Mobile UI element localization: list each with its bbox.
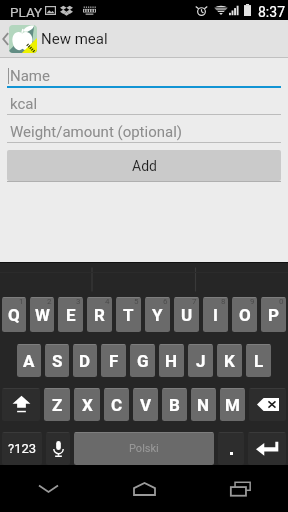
staticText: G	[137, 351, 149, 371]
button[interactable]: H	[159, 344, 184, 377]
staticText: ?123	[8, 441, 37, 456]
staticText: S	[52, 351, 63, 371]
button[interactable]: Home	[96, 465, 192, 512]
button[interactable]: Q	[2, 297, 26, 332]
staticText: M	[225, 395, 240, 415]
button[interactable]: Shift	[2, 388, 40, 421]
button[interactable]: Weight/amount (optional)	[7, 121, 281, 143]
button[interactable]: T	[116, 297, 141, 332]
button[interactable]: V	[133, 388, 158, 421]
button[interactable]: Back	[0, 465, 96, 512]
staticText: Q	[8, 305, 20, 325]
staticText: L	[254, 351, 264, 371]
staticText: H	[165, 351, 178, 371]
staticText: B	[169, 395, 180, 415]
button[interactable]: O	[232, 297, 257, 332]
button[interactable]: Polski	[74, 432, 214, 465]
staticText: W	[35, 305, 50, 325]
staticText: 7	[192, 297, 197, 306]
staticText: 8	[221, 297, 226, 306]
button[interactable]: X	[74, 388, 100, 421]
button[interactable]: P	[261, 297, 286, 332]
button[interactable]: A	[17, 344, 41, 377]
staticText: Polski	[129, 442, 159, 455]
staticText: T	[123, 305, 134, 325]
staticText: 9	[250, 297, 255, 306]
staticText: 4	[105, 297, 110, 306]
button[interactable]: Recent apps	[192, 465, 288, 512]
button[interactable]: F	[101, 344, 126, 377]
staticText: 6	[163, 297, 168, 306]
staticText: kcal	[10, 95, 38, 113]
button[interactable]: Add	[7, 150, 281, 181]
staticText: 3	[76, 297, 81, 306]
button[interactable]: E	[58, 297, 83, 332]
button[interactable]: Voice input	[46, 432, 70, 465]
button[interactable]: D	[73, 344, 97, 377]
staticText: 1	[19, 297, 24, 306]
button[interactable]: N	[191, 388, 216, 421]
button[interactable]: Enter	[248, 432, 286, 465]
staticText: Z	[52, 395, 63, 415]
staticText: F	[109, 351, 119, 371]
staticText: New meal	[41, 30, 108, 48]
staticText: K	[224, 351, 235, 371]
button[interactable]: W	[30, 297, 54, 332]
button[interactable]: U	[174, 297, 199, 332]
button[interactable]: kcal	[7, 93, 281, 115]
staticText: 5	[134, 297, 139, 306]
staticText: V	[140, 395, 152, 415]
staticText: Weight/amount (optional)	[10, 123, 183, 141]
staticText: 0	[279, 297, 284, 306]
staticText: C	[111, 395, 123, 415]
button[interactable]: M	[220, 388, 245, 421]
staticText: Add	[132, 158, 157, 174]
staticText: 2	[47, 297, 52, 306]
other: Navigate up	[2, 32, 9, 46]
button[interactable]: Backspace	[249, 388, 286, 421]
staticText: R	[94, 305, 105, 325]
button[interactable]: K	[217, 344, 242, 377]
staticText: P	[268, 305, 279, 325]
staticText: J	[196, 351, 206, 371]
button[interactable]: G	[130, 344, 155, 377]
button[interactable]: Z	[44, 388, 70, 421]
button[interactable]: R	[87, 297, 112, 332]
button[interactable]: S	[45, 344, 69, 377]
button[interactable]: J	[188, 344, 213, 377]
button[interactable]: Y	[145, 297, 170, 332]
button[interactable]: Period	[218, 432, 244, 465]
staticText: Name	[10, 67, 50, 85]
staticText: 8:37	[258, 4, 285, 20]
staticText: N	[197, 395, 210, 415]
staticText: O	[239, 305, 251, 325]
button[interactable]: I	[203, 297, 228, 332]
button[interactable]: L	[246, 344, 271, 377]
staticText: I	[213, 305, 218, 325]
staticText: E	[66, 305, 76, 325]
button[interactable]: ?123	[2, 432, 42, 465]
staticText: D	[79, 351, 91, 371]
staticText: PLAY	[10, 4, 43, 20]
staticText: X	[82, 395, 93, 415]
staticText: A	[23, 351, 35, 371]
button[interactable]: C	[104, 388, 129, 421]
staticText: Y	[152, 305, 163, 325]
staticText: U	[181, 305, 193, 325]
button[interactable]: Navigate up	[0, 20, 288, 58]
button[interactable]: Name	[7, 65, 281, 88]
button[interactable]: B	[162, 388, 187, 421]
